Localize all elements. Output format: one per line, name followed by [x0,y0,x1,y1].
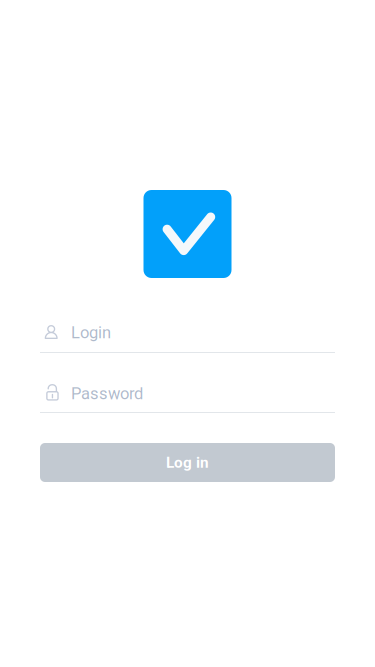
button[interactable]: Password [40,382,335,413]
staticText: Log in [166,453,209,471]
staticText: Password [71,384,143,403]
button[interactable]: Login [40,322,335,353]
button[interactable]: Log in [40,443,335,482]
staticText: Login [71,323,111,342]
